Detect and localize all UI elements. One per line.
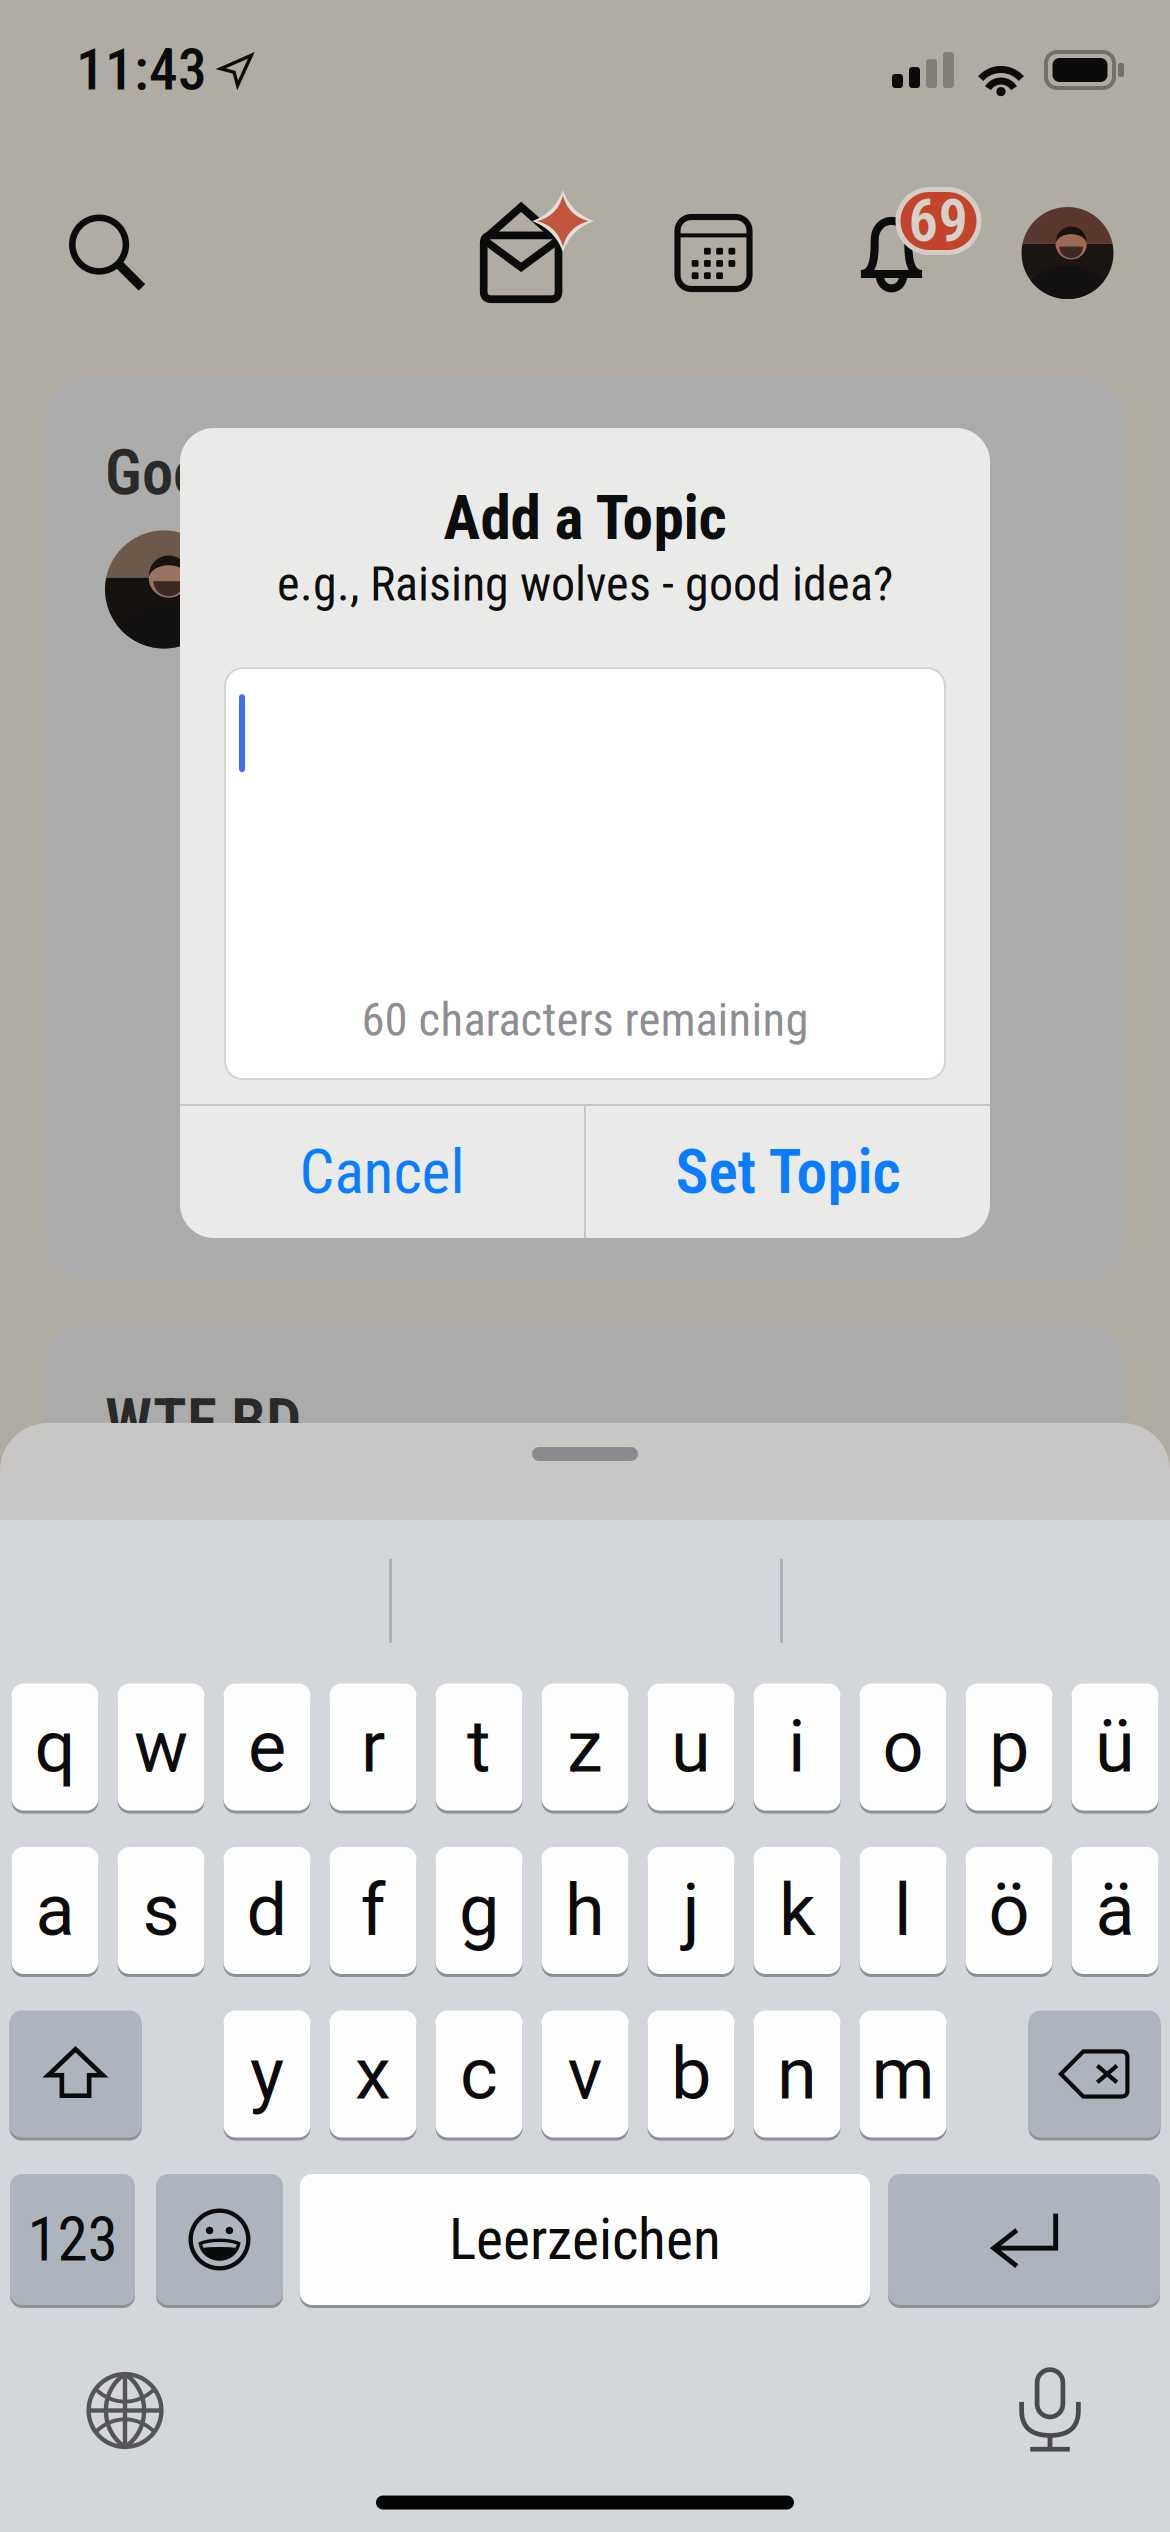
staticText: Good <box>105 436 235 509</box>
staticText: u <box>671 1705 711 1789</box>
button[interactable]: Leerzeichen <box>300 2172 870 2306</box>
button[interactable]: v <box>541 2009 628 2139</box>
button[interactable]: d <box>223 1845 310 1975</box>
button[interactable]: o <box>859 1682 946 1812</box>
staticText: y <box>250 2032 284 2116</box>
staticText: ä <box>1095 1868 1134 1953</box>
button[interactable]: ä <box>1071 1845 1158 1975</box>
staticText: c <box>460 2032 498 2116</box>
staticText: n <box>777 2032 817 2116</box>
staticText: l <box>894 1868 912 1953</box>
button[interactable]: b <box>647 2009 734 2139</box>
staticText: o <box>882 1705 923 1789</box>
staticText: s <box>142 1868 179 1953</box>
staticText: q <box>34 1705 75 1789</box>
staticText: m <box>871 2032 934 2116</box>
button[interactable]: c <box>435 2009 522 2139</box>
staticText: g <box>459 1868 499 1953</box>
button[interactable]: Calendar <box>653 191 773 315</box>
staticText: 69 <box>908 187 968 255</box>
button[interactable]: f <box>329 1845 416 1975</box>
button[interactable]: Notifications <box>861 191 1001 315</box>
button[interactable]: Emoji <box>156 2172 283 2306</box>
staticText: j <box>682 1868 699 1953</box>
staticText: t <box>467 1705 491 1789</box>
staticText: r <box>361 1705 385 1789</box>
button[interactable]: Set Topic <box>586 1106 990 1238</box>
button[interactable]: e <box>223 1682 310 1812</box>
staticText: w <box>134 1705 188 1789</box>
button[interactable]: Return <box>888 2172 1160 2306</box>
button[interactable]: g <box>435 1845 522 1975</box>
button[interactable]: s <box>117 1845 204 1975</box>
button[interactable]: u <box>647 1682 734 1812</box>
button[interactable]: i <box>753 1682 840 1812</box>
button[interactable]: Dictate <box>995 2355 1105 2465</box>
staticText: 123 <box>27 2204 117 2275</box>
button[interactable]: n <box>753 2009 840 2139</box>
button[interactable]: ö <box>965 1845 1052 1975</box>
button[interactable]: Delete <box>1028 2009 1160 2139</box>
staticText: ü <box>1095 1705 1135 1789</box>
button[interactable]: Next keyboard <box>70 2355 180 2465</box>
button[interactable]: t <box>435 1682 522 1812</box>
staticText: h <box>565 1868 605 1953</box>
staticText: k <box>779 1868 815 1953</box>
button[interactable]: r <box>329 1682 416 1812</box>
staticText: v <box>567 2032 602 2116</box>
staticText: e.g., Raising wolves - good idea? <box>277 556 893 612</box>
button[interactable]: ü <box>1071 1682 1158 1812</box>
staticText: 11:43 <box>76 36 207 104</box>
button[interactable]: Inbox <box>476 191 596 315</box>
staticText: Add a Topic <box>443 482 726 554</box>
button[interactable]: Cancel <box>180 1106 584 1238</box>
button[interactable]: Shift <box>9 2009 141 2139</box>
staticText: Set Topic <box>675 1136 900 1208</box>
button[interactable]: x <box>329 2009 416 2139</box>
button[interactable]: w <box>117 1682 204 1812</box>
staticText: x <box>355 2032 391 2116</box>
staticText: Leerzeichen <box>449 2206 721 2273</box>
button[interactable]: a <box>11 1845 98 1975</box>
button[interactable]: p <box>965 1682 1052 1812</box>
staticText: d <box>246 1868 287 1953</box>
staticText: p <box>989 1705 1029 1789</box>
button[interactable]: l <box>859 1845 946 1975</box>
staticText: e <box>248 1705 286 1789</box>
button[interactable]: q <box>11 1682 98 1812</box>
button[interactable]: 123 <box>10 2172 135 2306</box>
button[interactable]: Search <box>47 191 167 315</box>
staticText: ö <box>988 1868 1029 1953</box>
button[interactable]: Profile <box>1007 191 1127 315</box>
staticText: Cancel <box>299 1136 464 1208</box>
staticText: z <box>567 1705 603 1789</box>
button[interactable]: h <box>541 1845 628 1975</box>
staticText: b <box>671 2032 711 2116</box>
button[interactable]: y <box>223 2009 310 2139</box>
staticText: i <box>788 1705 806 1789</box>
staticText: 60 characters remaining <box>361 992 808 1047</box>
staticText: f <box>360 1868 385 1953</box>
button[interactable]: j <box>647 1845 734 1975</box>
button[interactable]: k <box>753 1845 840 1975</box>
staticText: a <box>35 1868 74 1953</box>
button[interactable]: m <box>859 2009 946 2139</box>
button[interactable]: z <box>541 1682 628 1812</box>
staticText: WTF BD <box>105 1385 301 1458</box>
